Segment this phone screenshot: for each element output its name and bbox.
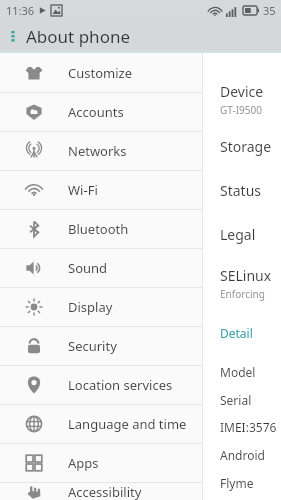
- staticText: Security: [68, 337, 117, 355]
- button[interactable]: SELinux s: [203, 266, 281, 301]
- button[interactable]: Serial numbe: [203, 392, 281, 408]
- button[interactable]: Accounts: [0, 93, 202, 131]
- button[interactable]: Storage: [203, 137, 281, 156]
- button[interactable]: Bluetooth: [0, 210, 202, 248]
- staticText: Status: [220, 181, 262, 200]
- staticText: Apps: [68, 454, 99, 472]
- staticText: Accounts: [68, 103, 124, 121]
- button[interactable]: Flyme versio: [203, 475, 281, 491]
- staticText: SELinux s: [220, 266, 281, 285]
- staticText: About phone: [26, 25, 131, 48]
- button[interactable]: Customize: [0, 53, 202, 92]
- staticText: Language and time: [68, 415, 187, 433]
- staticText: Detail: [220, 325, 253, 341]
- staticText: Wi-Fi: [68, 181, 98, 199]
- button[interactable]: Location services: [0, 366, 202, 404]
- button[interactable]: Display: [0, 288, 202, 326]
- button[interactable]: Model numb: [203, 364, 281, 380]
- staticText: Device na: [220, 82, 281, 101]
- staticText: Enforcing: [220, 287, 265, 301]
- staticText: Location services: [68, 376, 173, 394]
- staticText: Storage: [220, 137, 272, 156]
- button[interactable]: Networks: [0, 132, 202, 170]
- button[interactable]: Detail: [203, 323, 281, 343]
- staticText: Flyme versio: [220, 475, 281, 491]
- staticText: GT-I9500: [220, 103, 262, 117]
- button[interactable]: IMEI:357633: [203, 419, 281, 435]
- staticText: Serial numbe: [220, 392, 281, 408]
- button[interactable]: Status: [203, 181, 281, 200]
- staticText: Customize: [68, 64, 132, 82]
- staticText: IMEI:357633: [220, 419, 281, 435]
- button[interactable]: Menu: [0, 23, 26, 49]
- button[interactable]: Security: [0, 327, 202, 365]
- staticText: Bluetooth: [68, 220, 129, 238]
- staticText: Legal info: [220, 225, 281, 244]
- button[interactable]: Legal info: [203, 225, 281, 244]
- staticText: Android vers: [220, 447, 281, 463]
- button[interactable]: Wi-Fi: [0, 171, 202, 209]
- staticText: 35: [263, 3, 276, 18]
- button[interactable]: Device na: [203, 82, 281, 117]
- staticText: Networks: [68, 142, 127, 160]
- button[interactable]: Language and time: [0, 405, 202, 443]
- staticText: 11:36: [6, 3, 35, 18]
- staticText: Sound: [68, 259, 108, 277]
- button[interactable]: Apps: [0, 444, 202, 482]
- button[interactable]: Android vers: [203, 447, 281, 463]
- button[interactable]: Sound: [0, 249, 202, 287]
- staticText: Display: [68, 298, 113, 316]
- staticText: Model numb: [220, 364, 281, 380]
- button[interactable]: Accessibility: [0, 483, 202, 500]
- staticText: Accessibility: [68, 483, 142, 500]
